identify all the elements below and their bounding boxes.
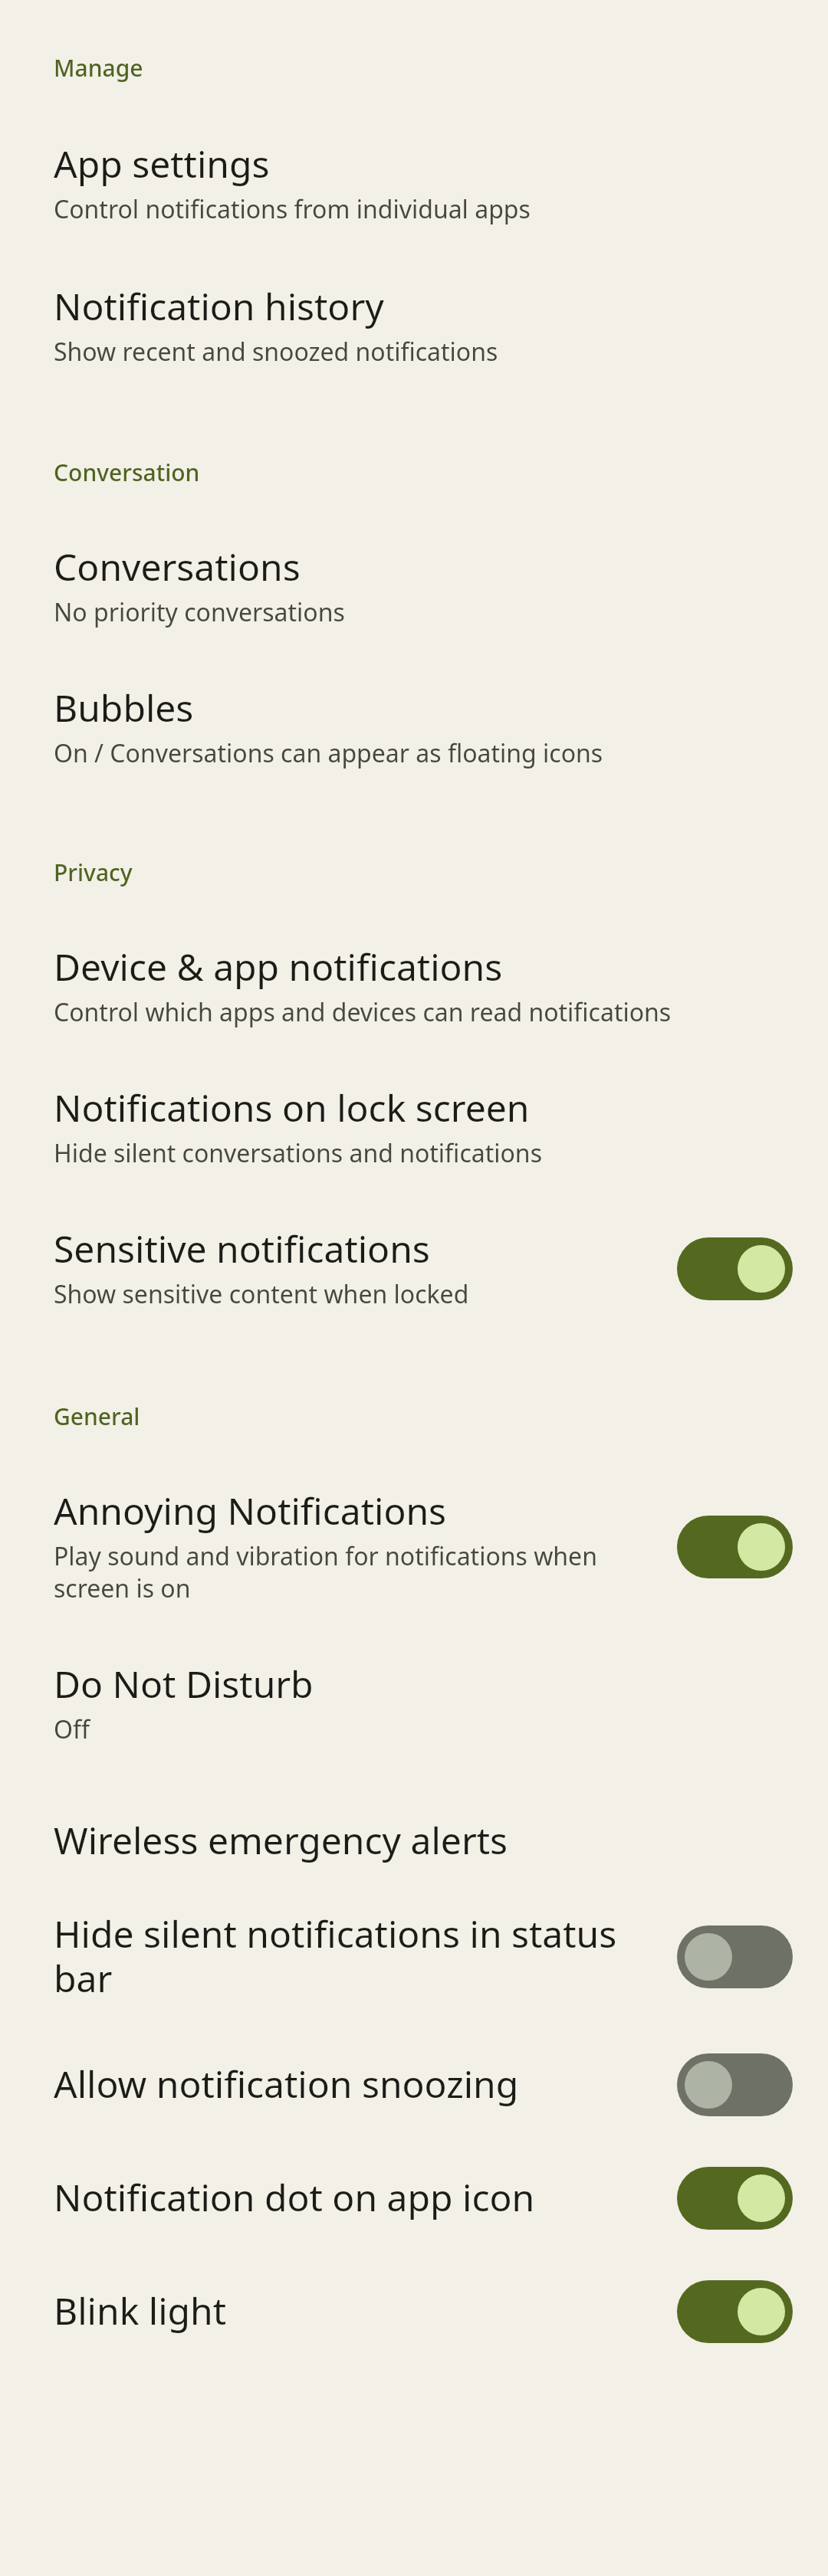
button[interactable]: Wireless emergency alerts bbox=[0, 1745, 828, 1863]
staticText: Manage bbox=[54, 55, 143, 83]
button[interactable]: Sensitive notifications bbox=[677, 1237, 793, 1300]
staticText: Allow notification snoozing bbox=[54, 2063, 519, 2107]
button[interactable]: Blink light bbox=[0, 2230, 828, 2343]
staticText: On / Conversations can appear as floatin… bbox=[54, 737, 603, 769]
staticText: Hide silent notifications in status bar bbox=[54, 1912, 659, 2001]
button[interactable]: Notification dot on app icon bbox=[0, 2116, 828, 2230]
button[interactable]: Hide silent notifications in status bar bbox=[677, 1925, 793, 1988]
staticText: Hide silent conversations and notificati… bbox=[54, 1137, 542, 1169]
staticText: Control notifications from individual ap… bbox=[54, 193, 531, 225]
staticText: Control which apps and devices can read … bbox=[54, 996, 672, 1028]
staticText: Notification history bbox=[54, 285, 384, 329]
staticText: Blink light bbox=[54, 2289, 227, 2334]
button[interactable]: Device & app notifications bbox=[0, 887, 828, 1028]
staticText: Do Not Disturb bbox=[54, 1663, 314, 1707]
button[interactable]: Annoying Notifications bbox=[677, 1516, 793, 1578]
staticText: Wireless emergency alerts bbox=[54, 1819, 508, 1863]
button[interactable]: Allow notification snoozing bbox=[0, 2001, 828, 2116]
staticText: Notification dot on app icon bbox=[54, 2176, 535, 2220]
button[interactable]: Notification dot on app icon bbox=[677, 2167, 793, 2230]
staticText: Device & app notifications bbox=[54, 946, 503, 990]
button[interactable]: Blink light bbox=[677, 2280, 793, 2343]
staticText: No priority conversations bbox=[54, 596, 345, 628]
button[interactable]: Notification history bbox=[0, 225, 828, 368]
staticText: Conversation bbox=[54, 460, 200, 487]
staticText: Privacy bbox=[54, 860, 133, 887]
staticText: Play sound and vibration for notificatio… bbox=[54, 1540, 659, 1604]
button[interactable]: Sensitive notifications bbox=[0, 1169, 828, 1310]
button[interactable]: Bubbles bbox=[0, 628, 828, 769]
staticText: Notifications on lock screen bbox=[54, 1086, 530, 1131]
button[interactable]: Notifications on lock screen bbox=[0, 1028, 828, 1169]
staticText: General bbox=[54, 1404, 140, 1431]
button[interactable]: Do Not Disturb bbox=[0, 1604, 828, 1745]
button[interactable]: Annoying Notifications bbox=[0, 1431, 828, 1604]
staticText: Show recent and snoozed notifications bbox=[54, 336, 498, 368]
staticText: Conversations bbox=[54, 546, 301, 590]
staticText: App settings bbox=[54, 143, 270, 187]
staticText: Annoying Notifications bbox=[54, 1490, 447, 1534]
staticText: Sensitive notifications bbox=[54, 1227, 430, 1272]
button[interactable]: App settings bbox=[0, 83, 828, 225]
staticText: Bubbles bbox=[54, 687, 194, 731]
staticText: Show sensitive content when locked bbox=[54, 1278, 469, 1310]
button[interactable]: Hide silent notifications in status bar bbox=[0, 1863, 828, 2001]
button[interactable]: Allow notification snoozing bbox=[677, 2053, 793, 2116]
button[interactable]: Conversations bbox=[0, 487, 828, 628]
staticText: Off bbox=[54, 1713, 90, 1745]
